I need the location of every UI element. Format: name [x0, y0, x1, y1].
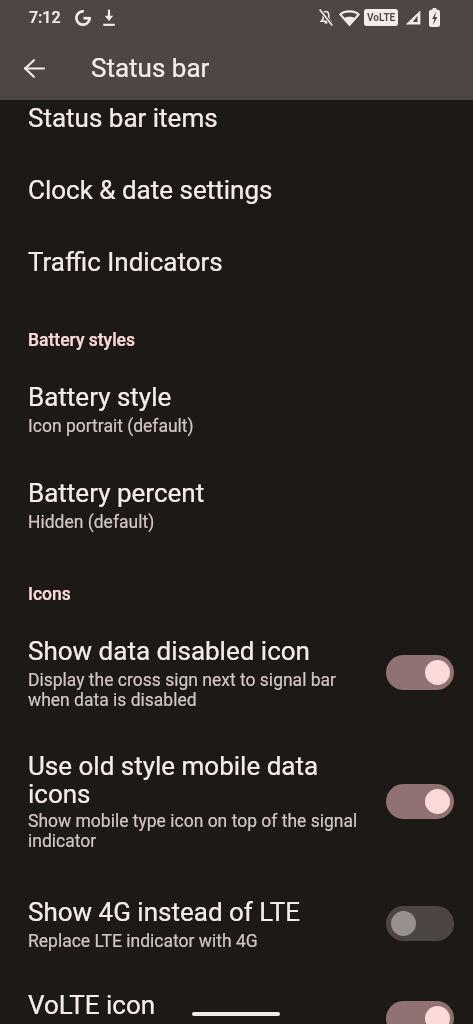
- staticText: VoLTE icon: [28, 990, 156, 1020]
- staticText: Show data disabled icon: [28, 636, 310, 666]
- staticText: Replace LTE indicator with 4G: [28, 931, 258, 952]
- button[interactable]: Back: [14, 48, 54, 88]
- staticText: Clock & date settings: [28, 175, 273, 205]
- button[interactable]: Toggle: [386, 655, 454, 690]
- staticText: indicator: [28, 831, 97, 852]
- button[interactable]: Show 4G instead of LTE: [0, 866, 473, 968]
- staticText: 7:12: [29, 8, 61, 27]
- button[interactable]: Show data disabled icon: [0, 614, 473, 724]
- button[interactable]: Battery percent: [0, 455, 473, 552]
- button[interactable]: Toggle: [386, 1001, 454, 1024]
- staticText: icons: [28, 779, 91, 809]
- staticText: Use old style mobile data: [28, 751, 319, 781]
- staticText: Icons: [28, 584, 71, 605]
- button[interactable]: VoLTE icon: [0, 968, 473, 1024]
- button[interactable]: Toggle: [386, 784, 454, 819]
- button[interactable]: Use old style mobile data: [0, 724, 473, 866]
- staticText: Show mobile type icon on top of the sign…: [28, 811, 358, 832]
- staticText: Status bar items: [28, 103, 218, 133]
- staticText: Traffic Indicators: [28, 247, 223, 277]
- staticText: Status bar: [91, 53, 210, 83]
- staticText: Battery styles: [28, 330, 136, 351]
- button[interactable]: Traffic Indicators: [0, 244, 473, 316]
- staticText: Hidden (default): [28, 512, 155, 533]
- staticText: Battery percent: [28, 478, 205, 508]
- button[interactable]: Battery style: [0, 360, 473, 455]
- button[interactable]: Status bar items: [0, 100, 473, 172]
- button[interactable]: Clock & date settings: [0, 172, 473, 244]
- staticText: when data is disabled: [28, 690, 197, 711]
- button[interactable]: Toggle: [386, 906, 454, 941]
- staticText: Battery style: [28, 382, 172, 412]
- staticText: Icon portrait (default): [28, 416, 194, 437]
- staticText: Show 4G instead of LTE: [28, 897, 301, 927]
- staticText: VoLTE: [367, 12, 396, 24]
- staticText: Display the cross sign next to signal ba…: [28, 670, 337, 691]
